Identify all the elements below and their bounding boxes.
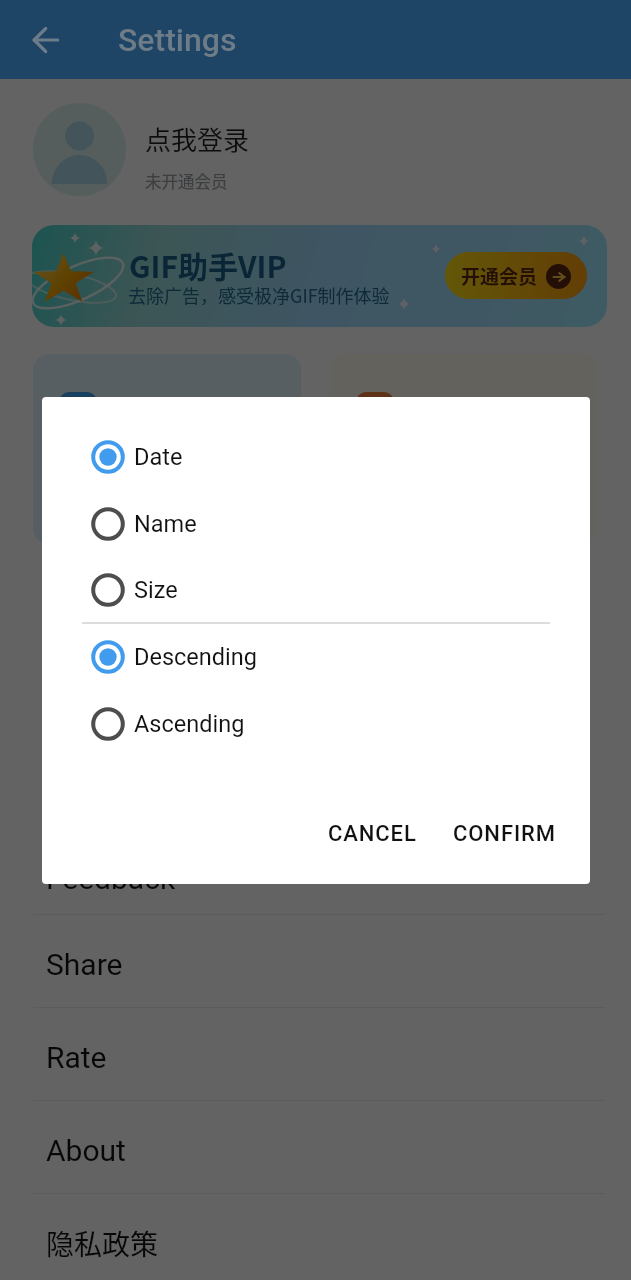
button[interactable]: Share (0, 915, 631, 1008)
button[interactable]: Name (42, 491, 590, 557)
button[interactable]: Size (42, 557, 590, 623)
staticText: 点我登录 (145, 120, 250, 158)
staticText: Size (134, 576, 178, 604)
staticText: About (46, 1133, 126, 1168)
staticText: 去除广告，感受极净GIF制作体验 (128, 282, 390, 308)
button[interactable]: GIF助手VIP (32, 225, 607, 327)
button[interactable]: GIF制作 (33, 354, 301, 544)
staticText: Share (46, 947, 123, 982)
button[interactable]: Date (42, 424, 590, 490)
staticText: 未开通会员 (145, 169, 228, 193)
button[interactable]: CONFIRM (439, 809, 570, 859)
button[interactable]: 隐私政策 (0, 1194, 631, 1280)
button[interactable]: Descending (42, 624, 590, 690)
staticText: Name (134, 510, 197, 538)
staticText: 图片合成动图 (57, 502, 172, 530)
staticText: CONFIRM (453, 821, 556, 847)
staticText: GIF助手VIP (129, 243, 287, 286)
staticText: 隐私政策 (46, 1223, 159, 1264)
staticText: Date (134, 443, 183, 471)
button[interactable]: Back (26, 20, 66, 60)
staticText: Settings (118, 21, 237, 59)
staticText: CANCEL (328, 821, 417, 847)
staticText: GIF制作 (57, 464, 149, 502)
button[interactable]: CANCEL (314, 809, 431, 859)
button[interactable]: Rate (0, 1008, 631, 1101)
staticText: 开通会员 (461, 262, 538, 290)
button[interactable]: 视频转GIF (330, 354, 598, 544)
staticText: Descending (134, 643, 257, 671)
staticText: Feedback (46, 861, 176, 896)
staticText: Rate (46, 1040, 107, 1075)
button[interactable]: 点我登录 (0, 79, 631, 221)
button[interactable]: 开通会员 (445, 252, 587, 299)
staticText: Ascending (134, 710, 245, 738)
button[interactable]: Ascending (42, 691, 590, 757)
button[interactable]: Feedback (0, 822, 631, 915)
button[interactable]: About (0, 1101, 631, 1194)
